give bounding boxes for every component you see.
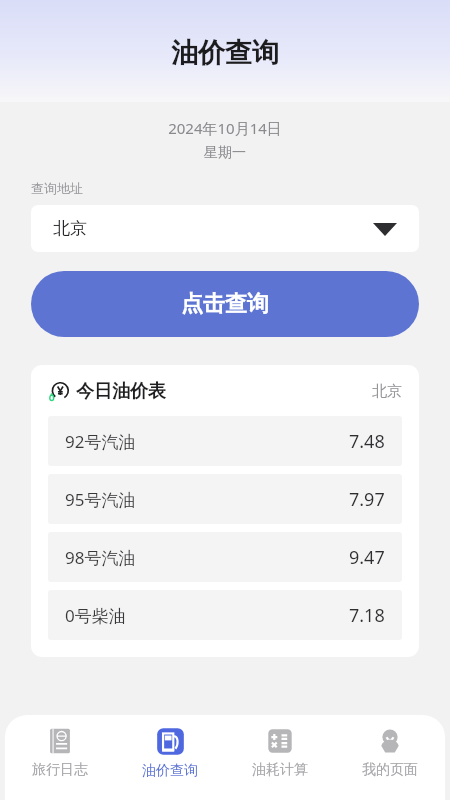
staticText: 查询地址 — [31, 180, 83, 196]
staticText: 9.47 — [349, 545, 385, 570]
staticText: 2024年10月14日 — [0, 118, 450, 138]
staticText: 7.48 — [349, 429, 385, 454]
staticText: 92号汽油 — [65, 430, 136, 453]
button[interactable]: 旅行日志 — [5, 715, 115, 800]
button[interactable]: 我的页面 — [335, 715, 445, 800]
staticText: 油价查询 — [142, 762, 198, 780]
other: 我的页面 — [375, 726, 405, 756]
button[interactable]: 油价查询 — [115, 715, 225, 800]
button[interactable]: 95号汽油 — [48, 474, 402, 524]
staticText: 北京 — [53, 218, 87, 239]
staticText: 点击查询 — [181, 290, 269, 318]
button[interactable]: 92号汽油 — [48, 416, 402, 466]
other: 旅行日志 — [45, 726, 75, 756]
other: 油价查询 — [155, 726, 186, 757]
staticText: 我的页面 — [362, 761, 418, 779]
button[interactable]: 北京 — [31, 205, 419, 252]
button[interactable]: 0号柴油 — [48, 590, 402, 640]
staticText: 油价查询 — [171, 36, 279, 70]
staticText: 95号汽油 — [65, 488, 136, 511]
staticText: 0号柴油 — [65, 604, 126, 627]
staticText: 北京 — [372, 382, 402, 401]
staticText: 油耗计算 — [252, 761, 308, 779]
staticText: 7.18 — [349, 603, 385, 628]
button[interactable]: 油耗计算 — [225, 715, 335, 800]
button[interactable]: 点击查询 — [31, 271, 419, 337]
staticText: 7.97 — [349, 487, 385, 512]
staticText: 旅行日志 — [32, 761, 88, 779]
button[interactable]: 98号汽油 — [48, 532, 402, 582]
other: 油耗计算 — [265, 726, 295, 756]
staticText: 98号汽油 — [65, 546, 136, 569]
staticText: 今日油价表 — [76, 380, 166, 403]
staticText: 星期一 — [0, 144, 450, 162]
